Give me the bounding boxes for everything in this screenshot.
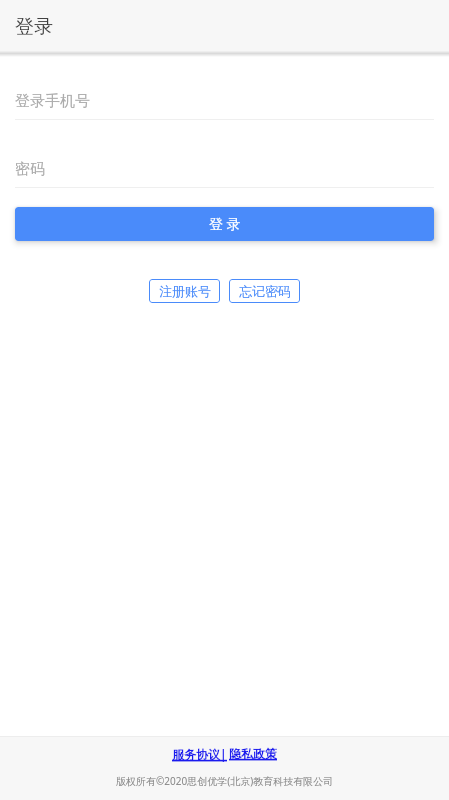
staticText: 隐私政策 [229,746,277,761]
staticText: 注册账号 [159,283,211,299]
staticText: 登录手机号 [15,92,90,111]
button[interactable]: 服务协议| [172,746,227,762]
button[interactable]: 密码 [0,150,449,188]
button[interactable]: 登录手机号 [0,82,449,120]
staticText: 登录 [15,15,53,39]
staticText: 服务协议| [172,746,227,762]
button[interactable]: 隐私政策 [229,746,277,761]
staticText: 忘记密码 [239,283,291,299]
staticText: 版权所有©2020思创优学(北京)教育科技有限公司 [116,774,334,788]
staticText: 密码 [15,160,45,179]
button[interactable]: 忘记密码 [229,279,300,303]
button[interactable]: 注册账号 [149,279,220,303]
staticText: 登 录 [209,214,241,233]
button[interactable]: 登 录 [15,207,434,241]
